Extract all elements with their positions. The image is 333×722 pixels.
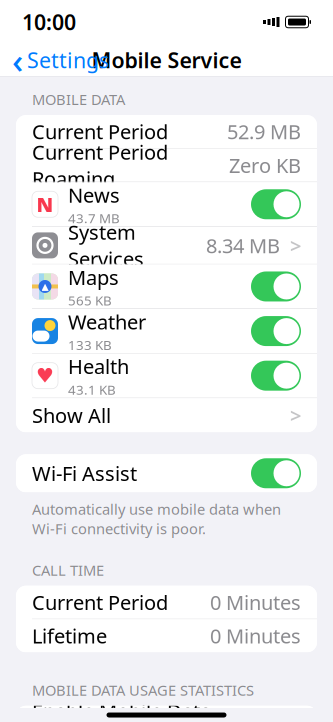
- staticText: Current Period: [32, 589, 168, 615]
- staticText: 133 KB: [68, 336, 112, 354]
- staticText: 0 Minutes: [210, 589, 301, 615]
- button[interactable]: System Services: [16, 227, 317, 264]
- staticText: N: [36, 191, 53, 218]
- staticText: ♥: [36, 364, 54, 387]
- button[interactable]: Lifetime: [16, 619, 317, 652]
- staticText: Settings: [27, 46, 109, 74]
- button[interactable]: ▲: [16, 264, 317, 308]
- button[interactable]: ♥: [16, 354, 317, 398]
- button[interactable]: Current Period: [16, 115, 317, 148]
- button[interactable]: Wi-Fi Assist: [16, 454, 317, 492]
- staticText: ‹: [12, 37, 23, 83]
- staticText: Health: [68, 353, 129, 380]
- staticText: Weather: [68, 308, 146, 335]
- staticText: 43.1 KB: [68, 381, 116, 398]
- button[interactable]: Weather: [16, 309, 317, 353]
- staticText: CALL TIME: [32, 560, 104, 580]
- staticText: Current Period: [32, 118, 168, 145]
- button[interactable]: ‹: [0, 44, 121, 76]
- button[interactable]: Current Period: [16, 586, 317, 619]
- staticText: 43.7 MB: [68, 209, 120, 227]
- staticText: MOBILE DATA: [32, 90, 125, 109]
- staticText: 10:00: [22, 8, 76, 36]
- staticText: Zero KB: [229, 152, 301, 178]
- staticText: ▲: [41, 281, 48, 292]
- staticText: 0 Minutes: [210, 622, 301, 649]
- staticText: >: [290, 232, 301, 259]
- staticText: 52.9 MB: [227, 118, 301, 145]
- staticText: Lifetime: [32, 622, 107, 649]
- staticText: Automatically use mobile data when Wi-Fi…: [32, 499, 281, 538]
- staticText: Current Period Roaming: [32, 139, 168, 192]
- staticText: 565 KB: [68, 291, 112, 309]
- staticText: Show All: [32, 402, 111, 429]
- staticText: News: [68, 182, 120, 208]
- staticText: Mobile Service: [91, 46, 241, 74]
- staticText: >: [290, 402, 301, 429]
- button[interactable]: Current Period Roaming: [16, 149, 317, 182]
- staticText: System Services: [68, 219, 144, 272]
- staticText: MOBILE DATA USAGE STATISTICS: [32, 680, 254, 700]
- staticText: Enable Mobile Data Usage Statistics: [32, 698, 211, 722]
- staticText: 8.34 MB: [206, 232, 280, 259]
- staticText: Wi-Fi Assist: [32, 460, 137, 487]
- button[interactable]: Show All: [16, 398, 317, 432]
- button[interactable]: N: [16, 182, 317, 226]
- staticText: Maps: [68, 264, 119, 290]
- button[interactable]: Enable Mobile Data Usage Statistics: [16, 706, 317, 722]
